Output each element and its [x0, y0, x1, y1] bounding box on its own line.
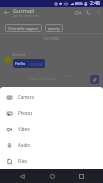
staticText: Audio — [18, 142, 31, 148]
staticText: Photos — [18, 110, 33, 116]
staticText: Gurmail — [12, 52, 26, 57]
staticText: qwerty — [48, 26, 60, 31]
staticText: seen — [64, 74, 72, 78]
staticText: 10:45 PM — [29, 63, 43, 67]
staticText: Camera — [18, 94, 35, 100]
button[interactable]: qwerty — [45, 24, 63, 32]
button[interactable]: Call — [83, 7, 94, 18]
button[interactable]: Camera — [0, 89, 103, 105]
staticText: tap for more info — [13, 14, 39, 18]
button[interactable]: More options — [94, 8, 103, 17]
button[interactable]: Audio — [0, 137, 103, 153]
button[interactable]: Attach — [90, 75, 99, 84]
staticText: Gurmail — [13, 7, 35, 14]
button[interactable]: Back — [0, 6, 13, 19]
button[interactable]: Video call — [72, 7, 83, 18]
button[interactable]: Chat with support — [5, 24, 42, 32]
staticText: Hello — [15, 61, 26, 67]
staticText: 2:48 — [90, 0, 100, 7]
button[interactable]: Photos — [0, 105, 103, 121]
button[interactable]: Video — [0, 121, 103, 137]
staticText: Type a message — [28, 76, 55, 81]
button[interactable]: Hello — [13, 59, 45, 68]
button[interactable]: Back — [15, 169, 29, 183]
staticText: Chat with support — [8, 26, 39, 31]
staticText: Files — [18, 158, 28, 164]
staticText: Video — [18, 126, 30, 132]
button[interactable]: Files — [0, 153, 103, 169]
staticText: 86% — [75, 1, 83, 6]
staticText: YESTERDAY — [43, 37, 60, 41]
button[interactable]: Home — [45, 169, 59, 183]
button[interactable]: Recents — [74, 169, 88, 183]
